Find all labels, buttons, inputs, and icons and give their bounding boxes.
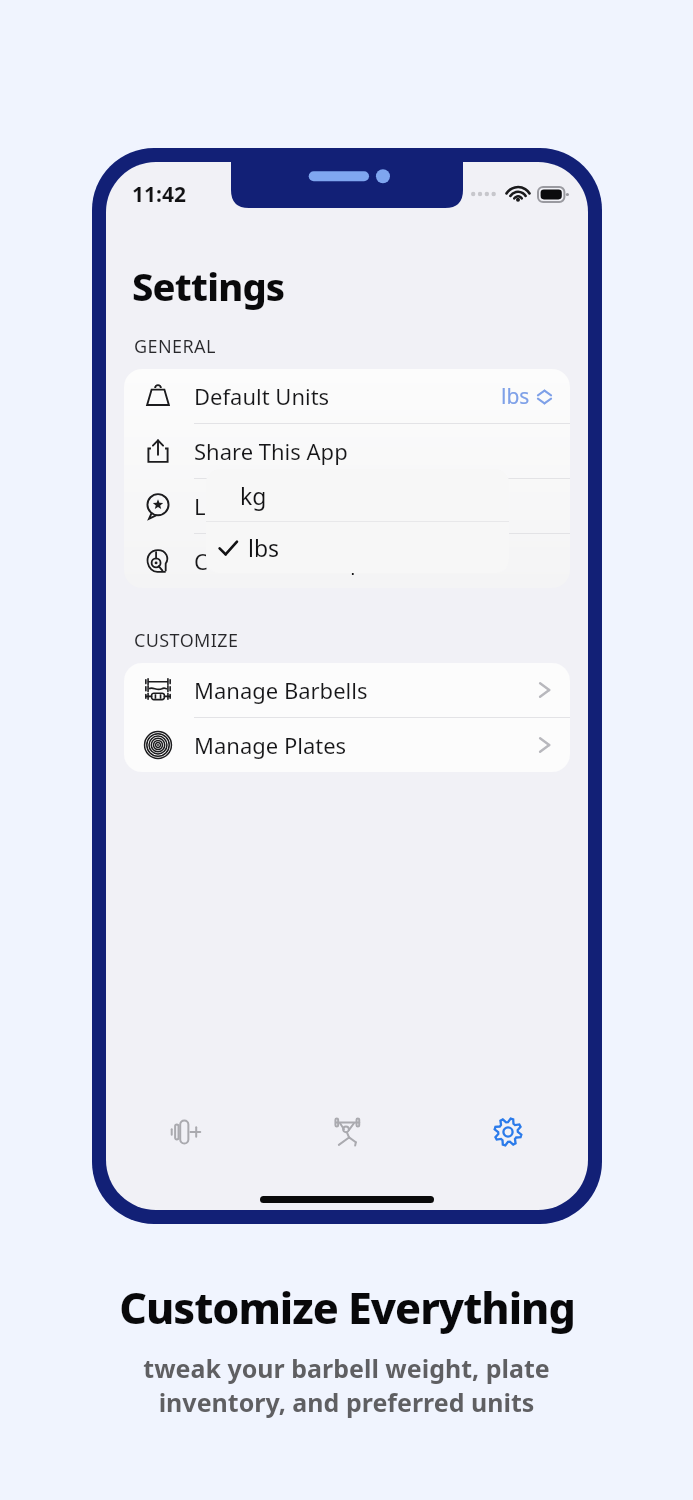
button[interactable]: Manage Barbells xyxy=(124,663,570,717)
staticText: CUSTOMIZE xyxy=(134,628,239,653)
button[interactable]: Settings xyxy=(427,1090,588,1174)
button[interactable]: Share This App xyxy=(124,424,570,478)
staticText: Share This App xyxy=(194,436,348,466)
button[interactable]: Plates xyxy=(106,1090,266,1174)
button[interactable]: Manage Plates xyxy=(124,718,570,772)
staticText: lbs xyxy=(501,382,530,411)
staticText: Manage Barbells xyxy=(194,675,368,705)
button[interactable]: Leave a Review xyxy=(124,479,570,533)
staticText: kg xyxy=(240,480,267,511)
staticText: tweak your barbell weight, plate invento… xyxy=(143,1351,550,1419)
staticText: Contact Developer xyxy=(194,546,385,576)
staticText: Leave a Review xyxy=(194,491,350,521)
staticText: Default Units xyxy=(194,381,330,411)
staticText: lbs xyxy=(248,532,280,563)
button[interactable]: Contact Developer xyxy=(124,534,570,588)
staticText: Settings xyxy=(132,260,285,312)
staticText: 11:42 xyxy=(132,180,186,209)
staticText: Customize Everything xyxy=(119,1278,575,1337)
button[interactable]: Default Units xyxy=(124,369,570,423)
button[interactable]: Workout xyxy=(266,1090,427,1174)
staticText: Manage Plates xyxy=(194,730,347,760)
staticText: GENERAL xyxy=(134,334,216,359)
